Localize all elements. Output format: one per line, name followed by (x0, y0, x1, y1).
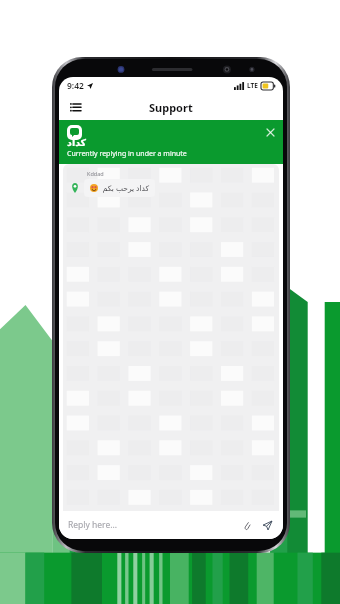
button[interactable]: Attach file (240, 518, 254, 532)
button[interactable]: Menu (66, 98, 84, 116)
button[interactable]: Send (260, 518, 274, 532)
staticText: كداد يرحب بكم (102, 183, 149, 193)
staticText: Kddad (87, 170, 104, 177)
button[interactable]: Reply here... (68, 511, 274, 539)
staticText: Reply here... (68, 519, 240, 531)
staticText: 9:42 (67, 80, 84, 92)
staticText: Currently replying in under a minute (67, 149, 187, 159)
staticText: Support (149, 100, 193, 115)
button[interactable]: Close (264, 126, 277, 139)
staticText: LTE (247, 81, 258, 90)
button[interactable]: كداد يرحب بكم (90, 183, 149, 193)
staticText: كداد (67, 137, 87, 148)
